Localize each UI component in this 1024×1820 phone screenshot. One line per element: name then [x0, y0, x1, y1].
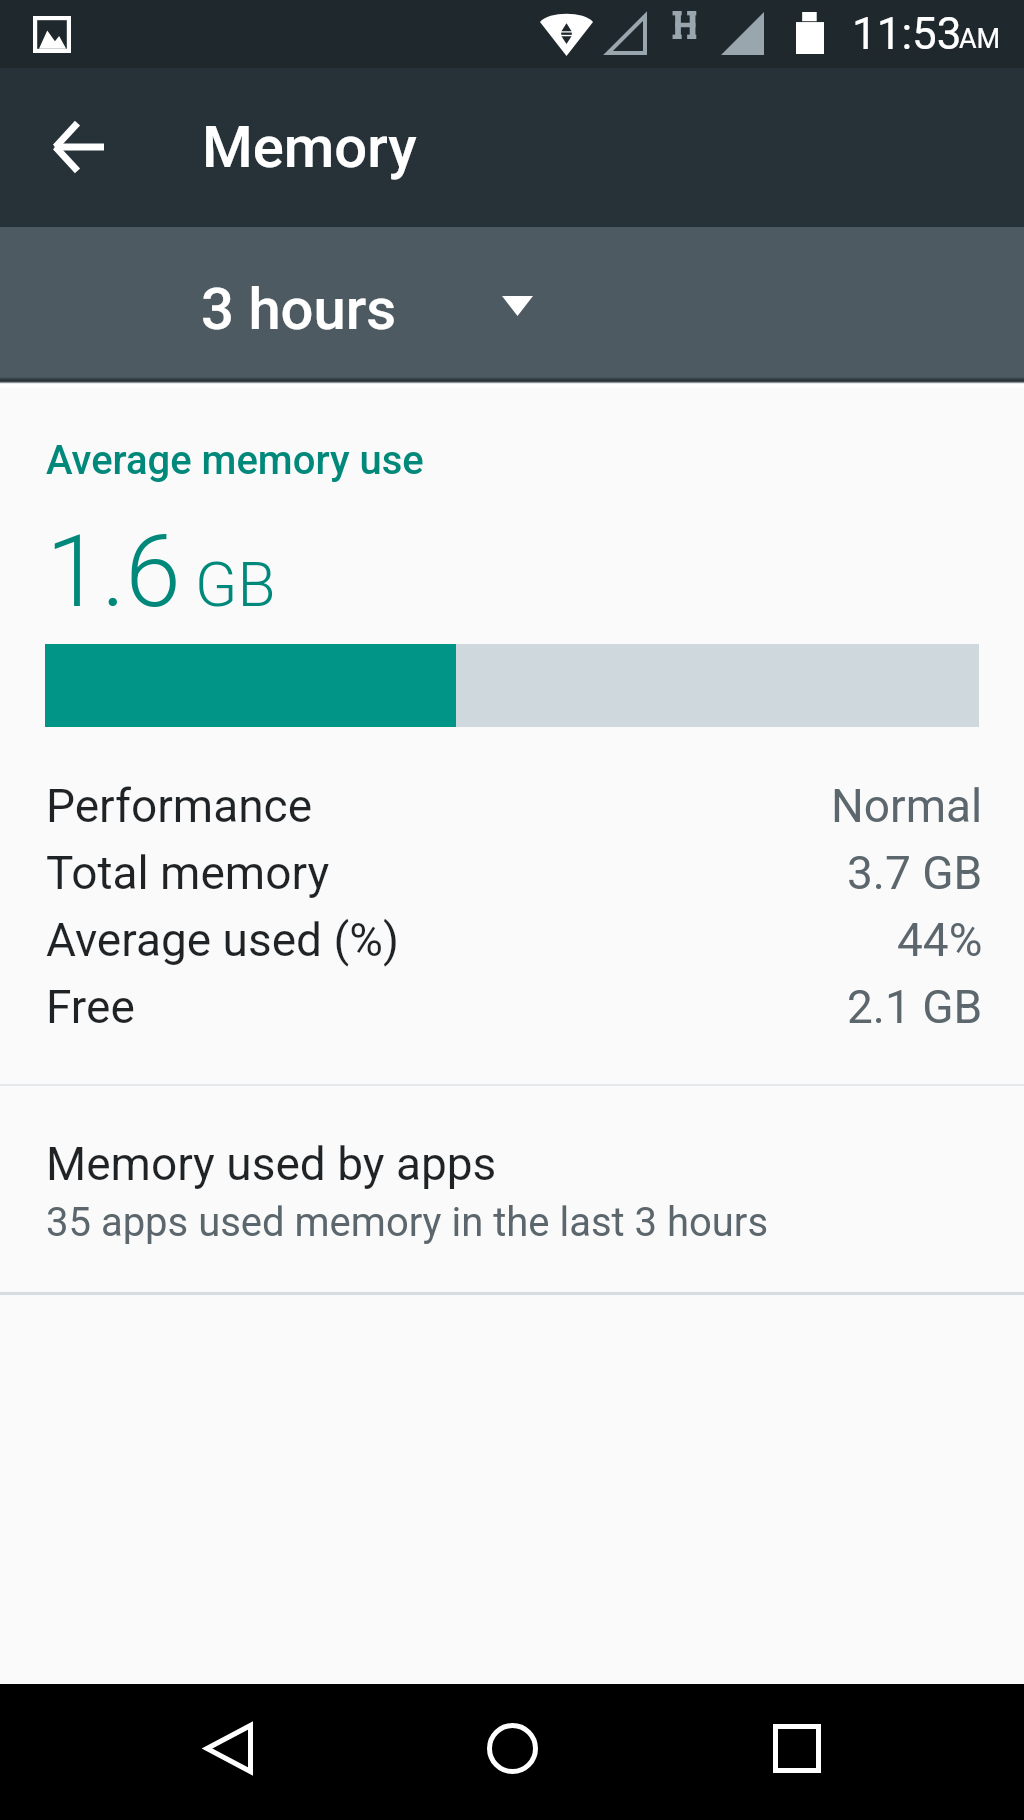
staticText: 1.6	[46, 513, 181, 630]
button[interactable]: 3 hours	[0, 227, 1024, 384]
staticText: GB	[195, 548, 276, 621]
staticText: 35 apps used memory in the last 3 hours	[46, 1199, 769, 1246]
button[interactable]: Back	[29, 99, 125, 195]
staticText: 2.1 GB	[847, 980, 983, 1034]
staticText: 3.7 GB	[847, 846, 983, 900]
button[interactable]: Home	[452, 1688, 572, 1808]
staticText: 11:53	[852, 8, 962, 60]
staticText: Memory	[202, 113, 417, 181]
button[interactable]: Back	[168, 1688, 288, 1808]
staticText: 3 hours	[201, 275, 397, 343]
staticText: AM	[959, 23, 1001, 55]
button[interactable]: Recent apps	[737, 1688, 857, 1808]
staticText: 44%	[897, 913, 983, 967]
staticText: Normal	[831, 779, 983, 833]
staticText: Free	[46, 980, 135, 1034]
staticText: Performance	[46, 779, 313, 833]
button[interactable]: Memory used by apps	[0, 1086, 1024, 1292]
staticText: Average used (%)	[46, 913, 399, 967]
staticText: Memory used by apps	[46, 1137, 497, 1191]
staticText: Total memory	[46, 846, 330, 900]
staticText: Average memory use	[46, 437, 424, 484]
